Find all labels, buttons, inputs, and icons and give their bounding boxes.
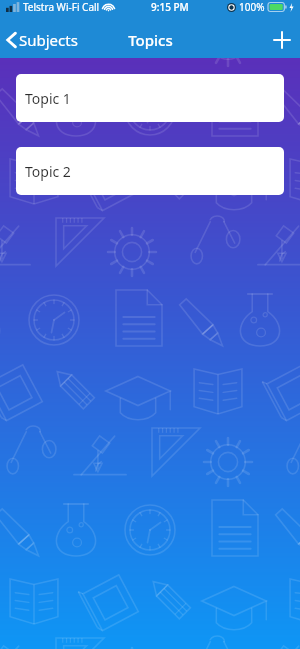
button[interactable]: Topic 1	[16, 74, 284, 122]
button[interactable]: Subjects	[0, 26, 86, 54]
staticText: Topics	[128, 30, 173, 50]
button[interactable]: Topic 2	[16, 147, 284, 195]
staticText: 9:15 PM	[151, 0, 189, 14]
button[interactable]: Add topic	[264, 22, 300, 58]
staticText: Subjects	[19, 30, 78, 50]
staticText: Telstra Wi-Fi Call	[23, 0, 100, 14]
staticText: 100%	[239, 0, 265, 14]
staticText: Topic 2	[25, 162, 71, 181]
staticText: Topic 1	[25, 89, 71, 108]
